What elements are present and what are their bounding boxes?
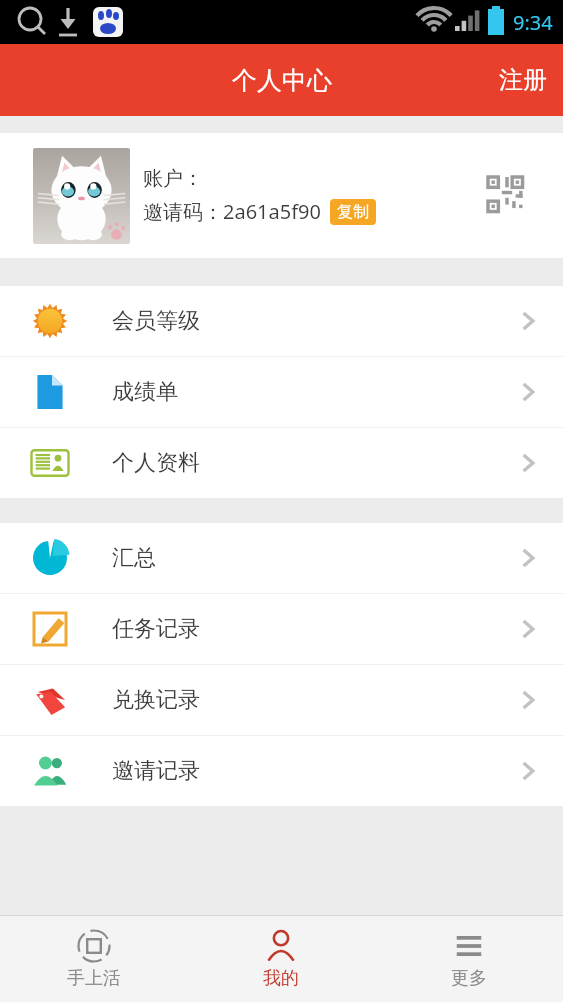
button[interactable]: 我的 bbox=[187, 916, 375, 1002]
button[interactable]: 账户： bbox=[0, 133, 563, 258]
button[interactable]: 手上活 bbox=[0, 916, 187, 1002]
staticText: 会员等级 bbox=[112, 307, 200, 335]
button[interactable]: 个人资料 bbox=[0, 428, 563, 498]
staticText: 账户： bbox=[143, 166, 203, 191]
button[interactable]: 成绩单 bbox=[0, 357, 563, 427]
staticText: 个人中心 bbox=[232, 65, 332, 96]
button[interactable]: 兑换记录 bbox=[0, 665, 563, 735]
staticText: 手上活 bbox=[67, 967, 121, 990]
button[interactable]: 会员等级 bbox=[0, 286, 563, 356]
button[interactable]: 更多 bbox=[375, 916, 563, 1002]
staticText: 个人资料 bbox=[112, 449, 200, 477]
staticText: 兑换记录 bbox=[112, 686, 200, 714]
staticText: 邀请记录 bbox=[112, 757, 200, 785]
staticText: 汇总 bbox=[112, 544, 156, 572]
staticText: 注册 bbox=[499, 65, 547, 95]
button[interactable]: 复制 bbox=[330, 199, 376, 225]
button[interactable]: 汇总 bbox=[0, 523, 563, 593]
staticText: 9:34 bbox=[513, 9, 553, 36]
staticText: 任务记录 bbox=[112, 615, 200, 643]
button[interactable]: 任务记录 bbox=[0, 594, 563, 664]
button[interactable]: 注册 bbox=[483, 53, 563, 107]
staticText: 邀请码：2a61a5f90 bbox=[143, 198, 321, 225]
staticText: 更多 bbox=[451, 967, 487, 990]
staticText: 我的 bbox=[263, 967, 299, 990]
staticText: 成绩单 bbox=[112, 378, 178, 406]
button[interactable]: 邀请记录 bbox=[0, 736, 563, 806]
staticText: 复制 bbox=[337, 202, 369, 222]
button[interactable]: QR code bbox=[488, 177, 526, 215]
